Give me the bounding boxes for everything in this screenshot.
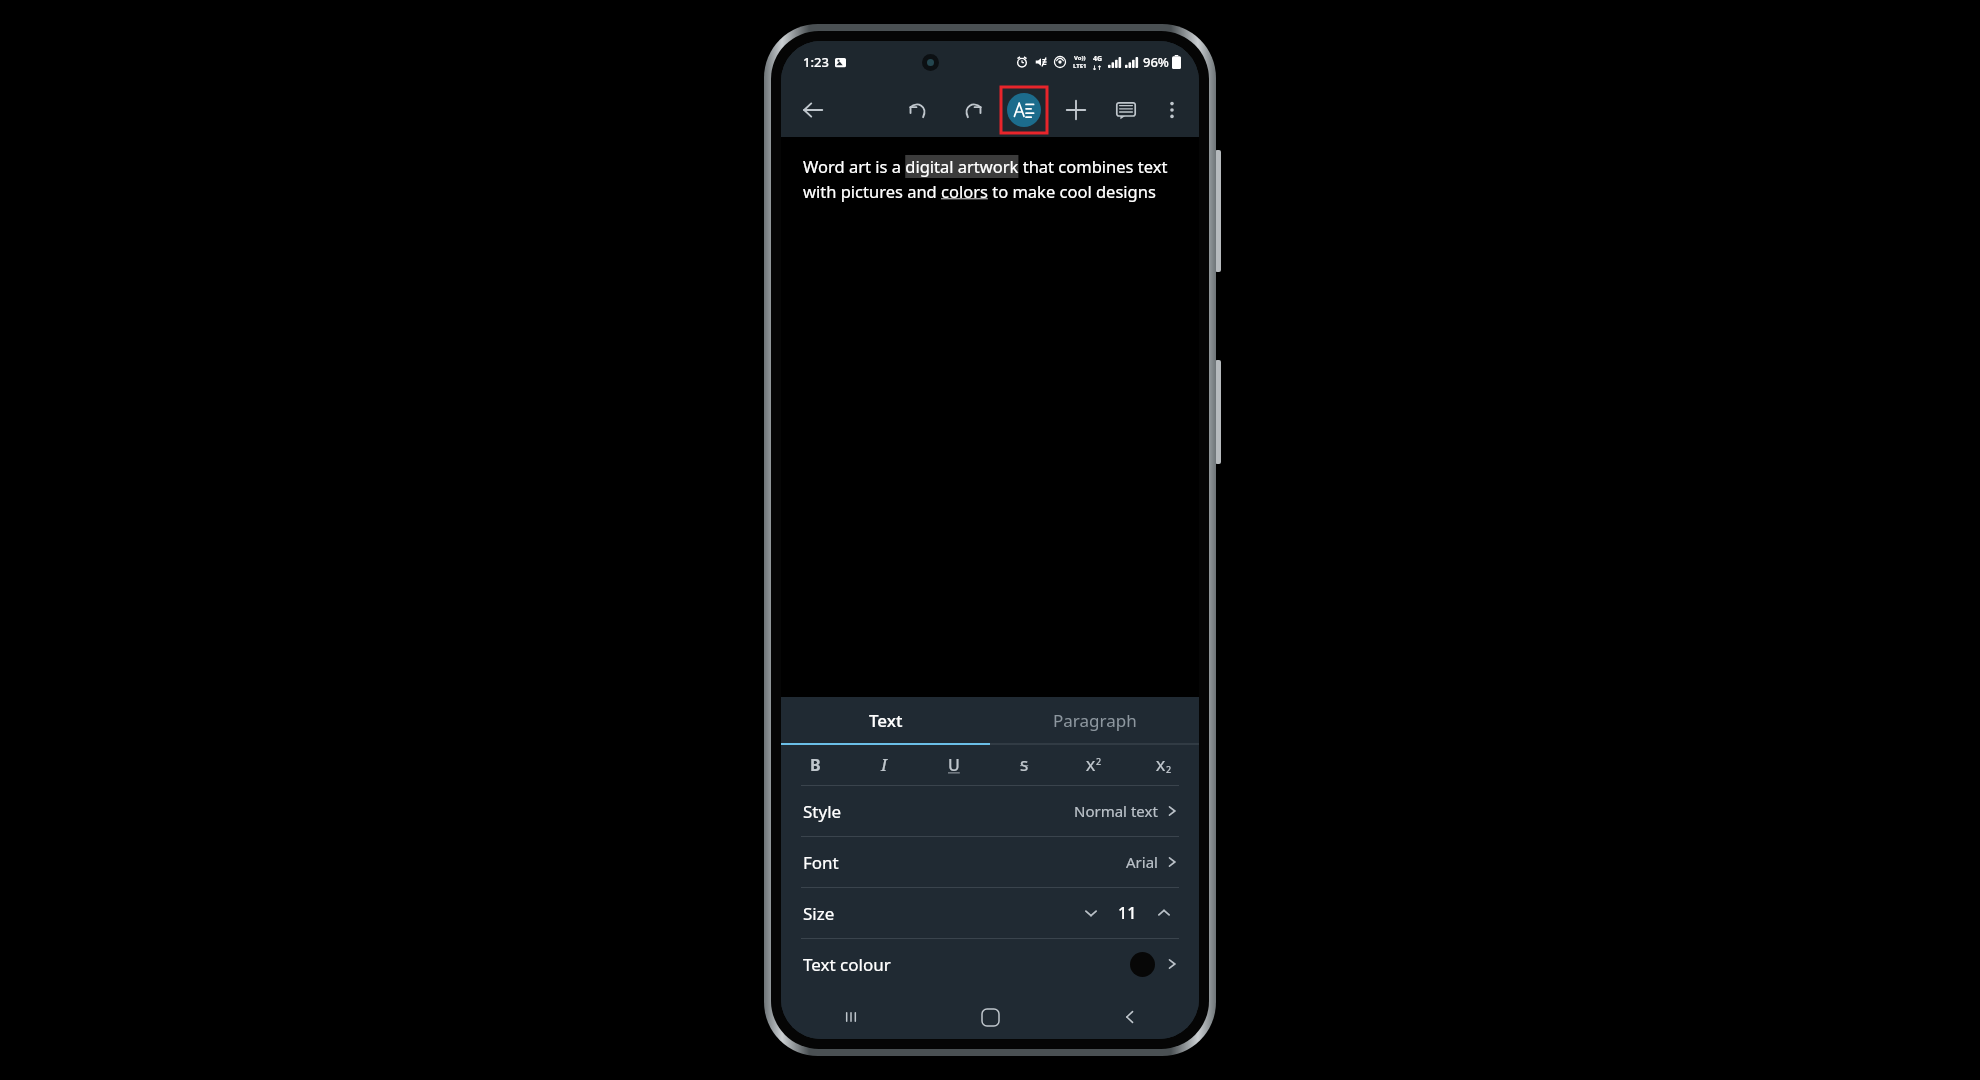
button[interactable]: Style (781, 786, 1199, 836)
button[interactable]: Subscript (1129, 745, 1199, 785)
staticText: 4G (1093, 54, 1103, 64)
staticText: Word art is a digital artwork that combi… (803, 155, 1177, 202)
button[interactable]: Paragraph (990, 697, 1199, 743)
button[interactable]: Font (781, 837, 1199, 887)
staticText: 1:23 (803, 53, 829, 71)
button[interactable]: Text (781, 697, 990, 743)
button[interactable]: Comments (1105, 89, 1147, 131)
button[interactable]: Strikethrough (989, 745, 1059, 785)
staticText: U (948, 754, 960, 776)
button[interactable]: Recent apps (781, 995, 921, 1039)
staticText: 2 (1166, 763, 1172, 775)
button[interactable]: Back (1060, 995, 1199, 1039)
staticText: 96% (1143, 53, 1169, 71)
button[interactable]: Italic (850, 745, 919, 785)
staticText: S (1020, 755, 1029, 775)
button[interactable]: Home (921, 995, 1060, 1039)
staticText: Paragraph (1053, 709, 1137, 732)
button[interactable]: Superscript (1059, 745, 1129, 785)
button[interactable]: More options (1151, 89, 1193, 131)
staticText: Font (803, 851, 839, 874)
button[interactable]: Redo (951, 89, 993, 131)
button[interactable]: Size (781, 888, 1199, 938)
staticText: B (810, 754, 821, 776)
staticText: ↓↑ (1092, 64, 1103, 71)
button[interactable]: Text formatting (1001, 87, 1047, 133)
staticText: LTE1 (1073, 62, 1087, 70)
staticText: I (881, 754, 888, 776)
staticText: Normal text (1074, 801, 1158, 821)
button[interactable]: Decrease size (1076, 898, 1106, 928)
button[interactable]: Underline (919, 745, 989, 785)
staticText: Vo)) (1074, 54, 1086, 62)
button[interactable]: Bold (781, 745, 850, 785)
staticText: Text (869, 709, 903, 732)
button[interactable]: Undo (897, 89, 939, 131)
staticText: Arial (1126, 852, 1158, 872)
button[interactable]: Back (791, 88, 835, 132)
staticText: X (1086, 755, 1096, 775)
staticText: X (1156, 755, 1166, 775)
staticText: Style (803, 800, 842, 823)
staticText: 2 (1096, 755, 1102, 767)
button[interactable]: Increase size (1149, 898, 1179, 928)
staticText: Size (803, 902, 835, 925)
button[interactable]: Insert (1055, 89, 1097, 131)
button[interactable]: Text colour (781, 939, 1199, 989)
staticText: Text colour (803, 953, 891, 976)
staticText: 11 (1118, 902, 1137, 924)
